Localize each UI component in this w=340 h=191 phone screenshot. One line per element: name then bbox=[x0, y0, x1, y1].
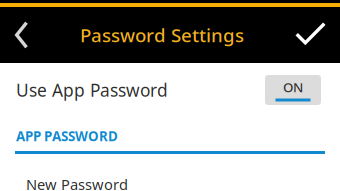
button[interactable]: Save bbox=[282, 7, 340, 63]
button[interactable]: Back bbox=[0, 7, 42, 63]
button[interactable]: Use App Password bbox=[0, 63, 340, 110]
button[interactable]: New Password bbox=[0, 154, 340, 191]
staticText: New Password bbox=[26, 174, 128, 191]
staticText: Use App Password bbox=[16, 78, 168, 101]
staticText: APP PASSWORD bbox=[16, 127, 118, 145]
staticText: Password Settings bbox=[80, 23, 244, 47]
staticText: ON bbox=[283, 78, 303, 96]
